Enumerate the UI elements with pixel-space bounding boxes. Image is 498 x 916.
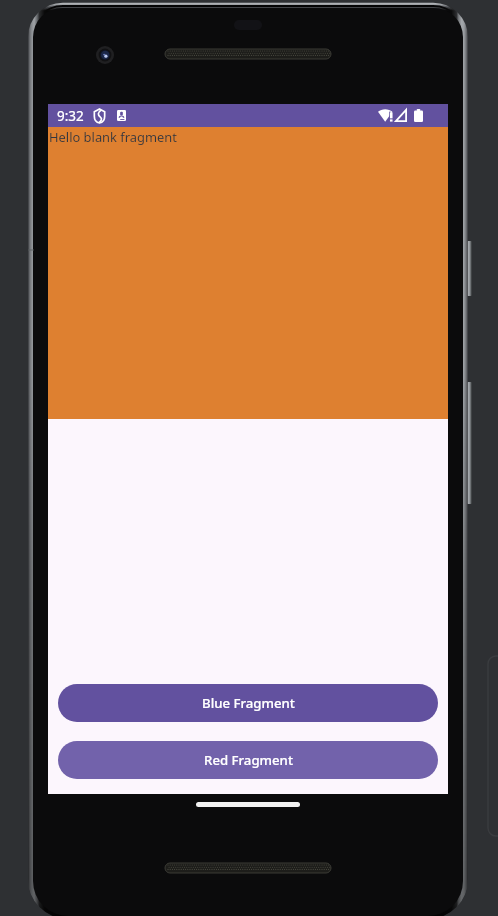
staticText: 9:32 xyxy=(57,107,84,125)
staticText: Hello blank fragment xyxy=(49,128,177,146)
staticText: Red Fragment xyxy=(204,751,293,769)
staticText: Blue Fragment xyxy=(202,694,295,712)
button[interactable]: Blue Fragment xyxy=(58,684,438,722)
button[interactable]: Red Fragment xyxy=(58,741,438,779)
